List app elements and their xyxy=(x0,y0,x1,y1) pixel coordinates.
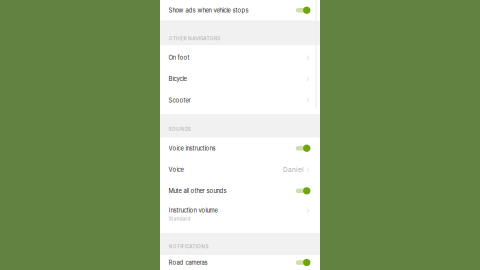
staticText: Road cameras xyxy=(169,259,208,266)
staticText: Voice instructions xyxy=(169,145,216,152)
staticText: Show ads when vehicle stops xyxy=(169,7,249,14)
staticText: Bicycle xyxy=(169,75,187,82)
button[interactable]: Voice xyxy=(160,159,320,180)
staticText: Standard xyxy=(169,216,191,222)
staticText: Voice xyxy=(169,166,184,173)
button[interactable]: Mute all other sounds xyxy=(160,180,320,201)
button[interactable]: Voice instructions xyxy=(160,138,320,159)
staticText: Instruction volume xyxy=(169,207,218,214)
staticText: SOUNDS xyxy=(169,126,191,132)
button[interactable]: On foot xyxy=(160,45,320,67)
staticText: NOTIFICATIONS xyxy=(169,244,208,249)
button[interactable]: Road cameras xyxy=(160,255,320,270)
staticText: Daniel xyxy=(283,166,304,173)
staticText: OTHER NAVIGATORS xyxy=(169,35,220,41)
staticText: Scooter xyxy=(169,97,191,104)
button[interactable]: Scooter xyxy=(160,88,320,114)
button[interactable]: Bicycle xyxy=(160,67,320,88)
staticText: On foot xyxy=(169,54,190,61)
staticText: Mute all other sounds xyxy=(169,187,227,194)
button[interactable]: Instruction volume xyxy=(160,201,320,233)
button[interactable]: Show ads when vehicle stops xyxy=(160,0,320,20)
